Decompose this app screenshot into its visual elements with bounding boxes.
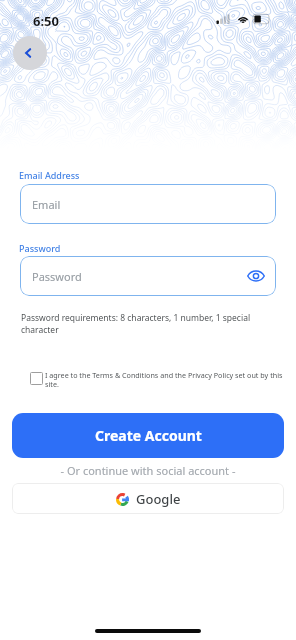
staticText: - Or continue with social account -: [0, 463, 296, 478]
staticText: Password requirements: 8 characters, 1 n…: [21, 312, 273, 336]
staticText: Password: [32, 269, 82, 284]
button[interactable]: Password: [20, 256, 276, 296]
staticText: Email: [32, 197, 61, 212]
staticText: 6:50: [33, 12, 59, 30]
staticText: Create Account: [95, 426, 202, 445]
button[interactable]: Create Account: [12, 413, 284, 458]
button[interactable]: Back: [13, 36, 47, 70]
button[interactable]: Google: [12, 483, 284, 514]
button[interactable]: Email: [20, 184, 276, 224]
button[interactable]: Show password: [244, 264, 268, 288]
button[interactable]: I agree to the Terms & Conditions and th…: [30, 370, 284, 389]
staticText: Google: [136, 490, 181, 508]
staticText: I agree to the Terms & Conditions and th…: [45, 370, 284, 389]
staticText: Email Address: [19, 169, 80, 181]
staticText: Password: [19, 242, 61, 254]
